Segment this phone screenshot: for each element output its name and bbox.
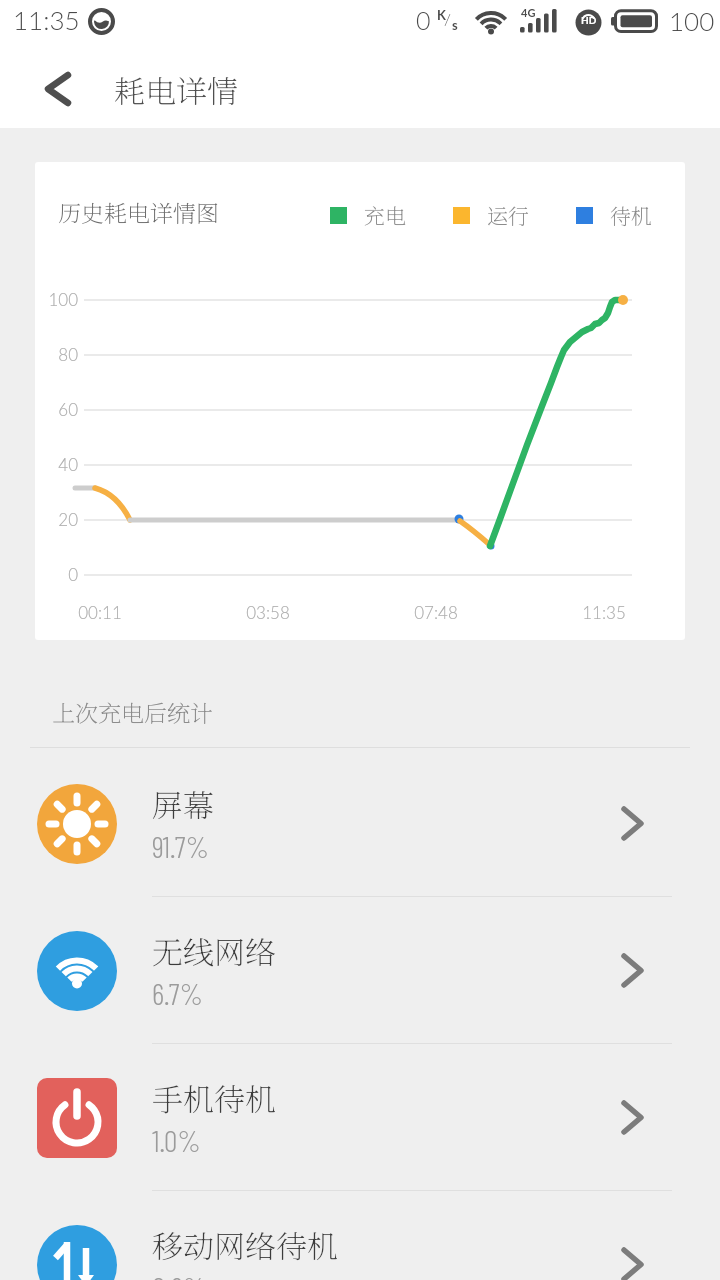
staticText: 11:35 bbox=[574, 602, 634, 622]
staticText: 00:11 bbox=[70, 602, 130, 622]
button[interactable] bbox=[28, 58, 98, 120]
staticText: 91.7% bbox=[152, 828, 209, 864]
staticText: 0.6% bbox=[152, 1269, 207, 1280]
staticText: 100 bbox=[669, 5, 715, 36]
staticText: 07:48 bbox=[406, 602, 466, 622]
button[interactable]: 手机待机 bbox=[0, 1044, 720, 1191]
staticText: 充电 bbox=[364, 200, 406, 230]
staticText: 1.0% bbox=[152, 1122, 201, 1158]
staticText: 6.7% bbox=[152, 975, 203, 1011]
staticText: 运行 bbox=[487, 200, 529, 230]
staticText: 0 bbox=[416, 5, 431, 35]
staticText: / bbox=[444, 9, 451, 28]
staticText: 20 bbox=[37, 509, 78, 529]
staticText: 11:35 bbox=[13, 4, 80, 35]
staticText: 40 bbox=[37, 454, 78, 474]
staticText: 4G bbox=[521, 6, 536, 19]
staticText: HD bbox=[581, 14, 597, 26]
staticText: 03:58 bbox=[238, 602, 298, 622]
staticText: s bbox=[452, 17, 458, 33]
button[interactable]: 无线网络 bbox=[0, 897, 720, 1044]
staticText: 0 bbox=[37, 564, 78, 584]
staticText: 手机待机 bbox=[152, 1075, 276, 1120]
staticText: 待机 bbox=[610, 200, 652, 230]
staticText: 移动网络待机 bbox=[152, 1222, 338, 1267]
staticText: 上次充电后统计 bbox=[52, 696, 213, 729]
staticText: 60 bbox=[37, 399, 78, 419]
staticText: 耗电详情 bbox=[114, 67, 238, 112]
staticText: 100 bbox=[37, 289, 78, 309]
staticText: K bbox=[437, 7, 446, 23]
staticText: 屏幕 bbox=[152, 781, 214, 826]
button[interactable]: 屏幕 bbox=[0, 750, 720, 897]
staticText: 历史耗电详情图 bbox=[58, 196, 219, 229]
staticText: 无线网络 bbox=[152, 928, 276, 973]
button[interactable]: 移动网络待机 bbox=[0, 1191, 720, 1280]
staticText: 80 bbox=[37, 344, 78, 364]
